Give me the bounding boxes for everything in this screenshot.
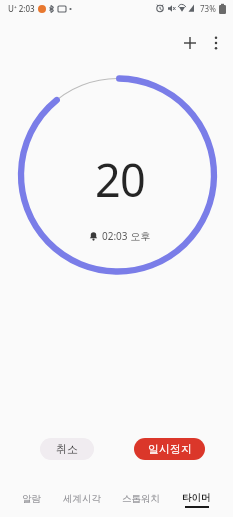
button[interactable] <box>178 31 202 55</box>
button[interactable]: 세계시각 <box>63 493 101 508</box>
button[interactable]: 취소 <box>40 438 94 460</box>
button[interactable] <box>204 31 228 55</box>
staticText: U⁺ 2:03 <box>8 3 35 14</box>
button[interactable]: 일시정지 <box>134 438 205 460</box>
staticText: 일시정지 <box>148 442 192 456</box>
button[interactable]: 스톱워치 <box>122 493 160 508</box>
staticText: 스톱워치 <box>122 493 160 505</box>
staticText: 02:03 오후 <box>102 229 151 243</box>
button[interactable]: 타이머 <box>182 492 211 508</box>
staticText: 취소 <box>56 442 78 456</box>
staticText: 타이머 <box>182 492 211 504</box>
staticText: 알람 <box>22 493 41 505</box>
staticText: 세계시각 <box>63 493 101 505</box>
staticText: 20 <box>95 149 145 210</box>
staticText: 73% <box>200 3 216 14</box>
button[interactable]: 알람 <box>22 493 41 508</box>
